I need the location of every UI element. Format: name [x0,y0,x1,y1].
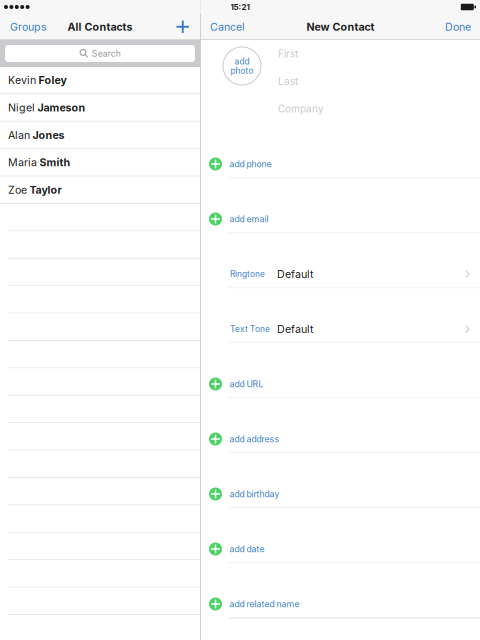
staticText: add birthday [229,489,279,499]
staticText: Company [278,103,324,115]
staticText: add phone [229,159,271,169]
button[interactable]: add URL [201,343,480,398]
button[interactable]: Text Tone [201,288,480,343]
staticText: Default [277,322,313,335]
staticText: add [234,56,249,66]
staticText: Cancel [210,20,245,33]
staticText: Default [277,267,313,280]
button[interactable]: Ringtone [201,233,480,288]
button[interactable]: Alan [0,122,200,149]
staticText: Maria [8,156,37,169]
staticText: First [278,48,298,60]
button[interactable]: add date [201,508,480,563]
button[interactable]: Nigel [0,94,200,122]
staticText: New Contact [306,20,374,33]
button[interactable]: add birthday [201,453,480,508]
button[interactable]: add [223,47,261,85]
button[interactable]: add email [201,178,480,233]
staticText: 15:21 [230,2,249,12]
staticText: Alan [8,128,30,141]
button[interactable]: Add contact [168,14,200,39]
staticText: add email [229,214,268,224]
button[interactable]: add phone [201,123,480,178]
staticText: Text Tone [230,324,270,334]
staticText: All Contacts [67,20,132,33]
staticText: Kevin [8,74,36,87]
staticText: Last [278,75,298,87]
staticText: add address [229,434,279,444]
staticText: Smith [39,156,70,169]
staticText: Search [92,48,121,59]
staticText: Nigel [8,101,35,114]
staticText: add URL [229,379,263,389]
button[interactable]: Groups [0,14,55,39]
staticText: add date [229,544,264,554]
button[interactable]: add related name [201,563,480,618]
button[interactable]: Done [437,14,480,39]
staticText: Done [445,20,471,33]
staticText: add related name [229,599,299,609]
button[interactable]: Zoe [0,177,200,204]
staticText: photo [230,65,253,76]
button[interactable]: Maria [0,149,200,177]
staticText: Taylor [29,183,61,196]
staticText: Zoe [8,183,27,196]
staticText: Foley [38,74,66,87]
staticText: Jameson [37,101,85,114]
staticText: Jones [32,128,64,141]
staticText: Groups [10,20,47,33]
button[interactable]: Kevin [0,67,200,94]
button[interactable]: Cancel [201,14,253,39]
button[interactable]: add address [201,398,480,453]
staticText: Ringtone [230,269,265,279]
